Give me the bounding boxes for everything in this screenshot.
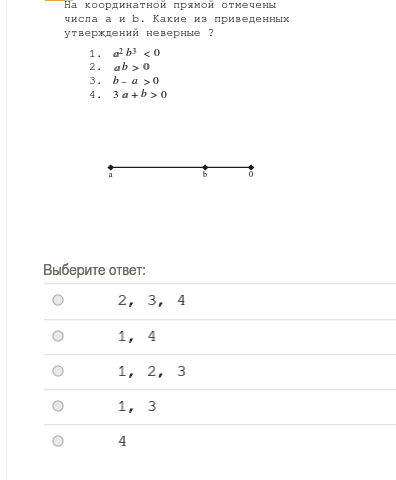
button[interactable]: Выбрать вариант 4	[0, 424, 396, 459]
staticText: 2, 3, 4	[118, 292, 187, 308]
staticText: b	[141, 88, 147, 99]
staticText: 1.	[89, 48, 103, 59]
staticText: 1.	[89, 48, 103, 59]
staticText: a	[132, 75, 138, 86]
staticText: >	[151, 90, 157, 101]
other: Выбрать вариант 4	[52, 435, 64, 447]
other: Выбрать вариант 1, 2, 3	[52, 365, 64, 377]
staticText: >	[144, 77, 150, 88]
staticText: 1, 4	[118, 328, 158, 344]
staticText: утверждений неверные ?	[64, 27, 215, 38]
staticText: 3	[133, 48, 137, 56]
staticText: 1, 2, 3	[118, 363, 187, 379]
staticText: Выберите ответ:	[43, 264, 146, 278]
button[interactable]: Выбрать вариант 1, 4	[0, 319, 396, 354]
staticText: 3	[113, 89, 119, 100]
staticText: 3.	[89, 75, 103, 86]
staticText: 2, 3, 4	[117, 292, 186, 308]
staticText: 0	[154, 47, 160, 58]
staticText: b	[203, 171, 207, 179]
button[interactable]: Выбрать вариант 1, 3	[0, 389, 396, 424]
staticText: 2.	[89, 61, 103, 72]
staticText: 0	[144, 61, 150, 72]
staticText: 3.	[89, 75, 103, 86]
staticText: b	[122, 61, 128, 72]
staticText: 0	[143, 61, 149, 72]
staticText: 4	[118, 433, 128, 449]
staticText: –	[121, 76, 127, 87]
staticText: +	[132, 89, 139, 100]
staticText: 0	[161, 89, 167, 100]
other: Выбрать вариант 2, 3, 4	[52, 294, 64, 306]
staticText: b	[126, 47, 132, 58]
staticText: b	[122, 61, 128, 72]
other: Выбрать вариант 1, 4	[52, 330, 64, 342]
staticText: a	[113, 48, 119, 59]
staticText: b	[141, 88, 147, 99]
staticText: 0	[153, 75, 159, 86]
staticText: a	[115, 62, 121, 73]
staticText: –	[121, 76, 127, 87]
staticText: >	[151, 90, 157, 101]
staticText: b	[113, 75, 119, 86]
staticText: 2.	[89, 61, 103, 72]
staticText: 1, 4	[117, 328, 157, 344]
staticText: +	[131, 89, 138, 100]
staticText: b	[113, 75, 119, 86]
staticText: a	[123, 89, 129, 100]
other: Выбрать вариант 1, 3	[52, 400, 64, 412]
staticText: 2	[119, 48, 123, 56]
staticText: 1, 3	[118, 398, 158, 414]
staticText: 4	[117, 433, 127, 449]
staticText: b	[203, 171, 207, 179]
staticText: a	[114, 48, 120, 59]
button[interactable]: Выбрать вариант 1, 2, 3	[0, 354, 396, 389]
staticText: 1, 3	[117, 398, 157, 414]
staticText: 0	[161, 89, 167, 100]
staticText: 0	[249, 171, 253, 179]
staticText: a	[114, 62, 120, 73]
staticText: a	[122, 89, 128, 100]
staticText: <	[144, 49, 150, 60]
staticText: b	[126, 47, 132, 58]
staticText: a	[132, 75, 138, 86]
staticText: На координатной прямой отмечены	[64, 0, 276, 10]
staticText: 0	[249, 171, 253, 179]
staticText: a	[109, 171, 113, 179]
staticText: <	[144, 49, 150, 60]
staticText: 3	[113, 89, 119, 100]
staticText: >	[144, 77, 150, 88]
staticText: 1, 2, 3	[117, 363, 186, 379]
staticText: 2	[119, 48, 123, 56]
staticText: 3	[132, 48, 136, 56]
staticText: На координатной прямой отмечены	[64, 0, 276, 10]
staticText: >	[133, 63, 139, 74]
staticText: утверждений неверные ?	[64, 27, 215, 38]
button[interactable]: Выбрать вариант 2, 3, 4	[0, 283, 396, 318]
staticText: a	[109, 171, 113, 179]
staticText: 0	[154, 47, 160, 58]
staticText: Выберите ответ:	[43, 264, 146, 278]
staticText: числа a и b. Какие из приведенных	[64, 13, 290, 24]
staticText: 0	[153, 75, 159, 86]
staticText: 4.	[89, 89, 103, 100]
staticText: числа a и b. Какие из приведенных	[64, 13, 290, 24]
staticText: 4.	[89, 89, 103, 100]
staticText: >	[132, 63, 138, 74]
